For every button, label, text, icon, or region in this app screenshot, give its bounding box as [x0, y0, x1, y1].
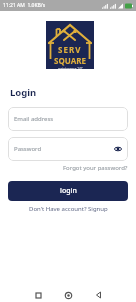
button[interactable]: Email address [8, 107, 128, 131]
staticText: Login [10, 86, 37, 99]
staticText: maintenance 247 [58, 67, 83, 69]
button[interactable]: login [8, 181, 128, 201]
staticText: SERV [58, 44, 82, 55]
staticText: 11:21 AM 1.0KB/s [3, 2, 46, 9]
button[interactable]: Don't Have account? Signup [29, 205, 108, 213]
staticText: Email address [14, 115, 54, 123]
button[interactable]: Password [8, 137, 128, 161]
staticText: SQUARE [54, 55, 86, 66]
button[interactable] [31, 288, 45, 302]
staticText: login [60, 186, 77, 196]
button[interactable]: Forgot your password? [63, 164, 128, 172]
button[interactable] [61, 288, 75, 302]
button[interactable] [91, 288, 105, 302]
staticText: Password [14, 145, 42, 153]
